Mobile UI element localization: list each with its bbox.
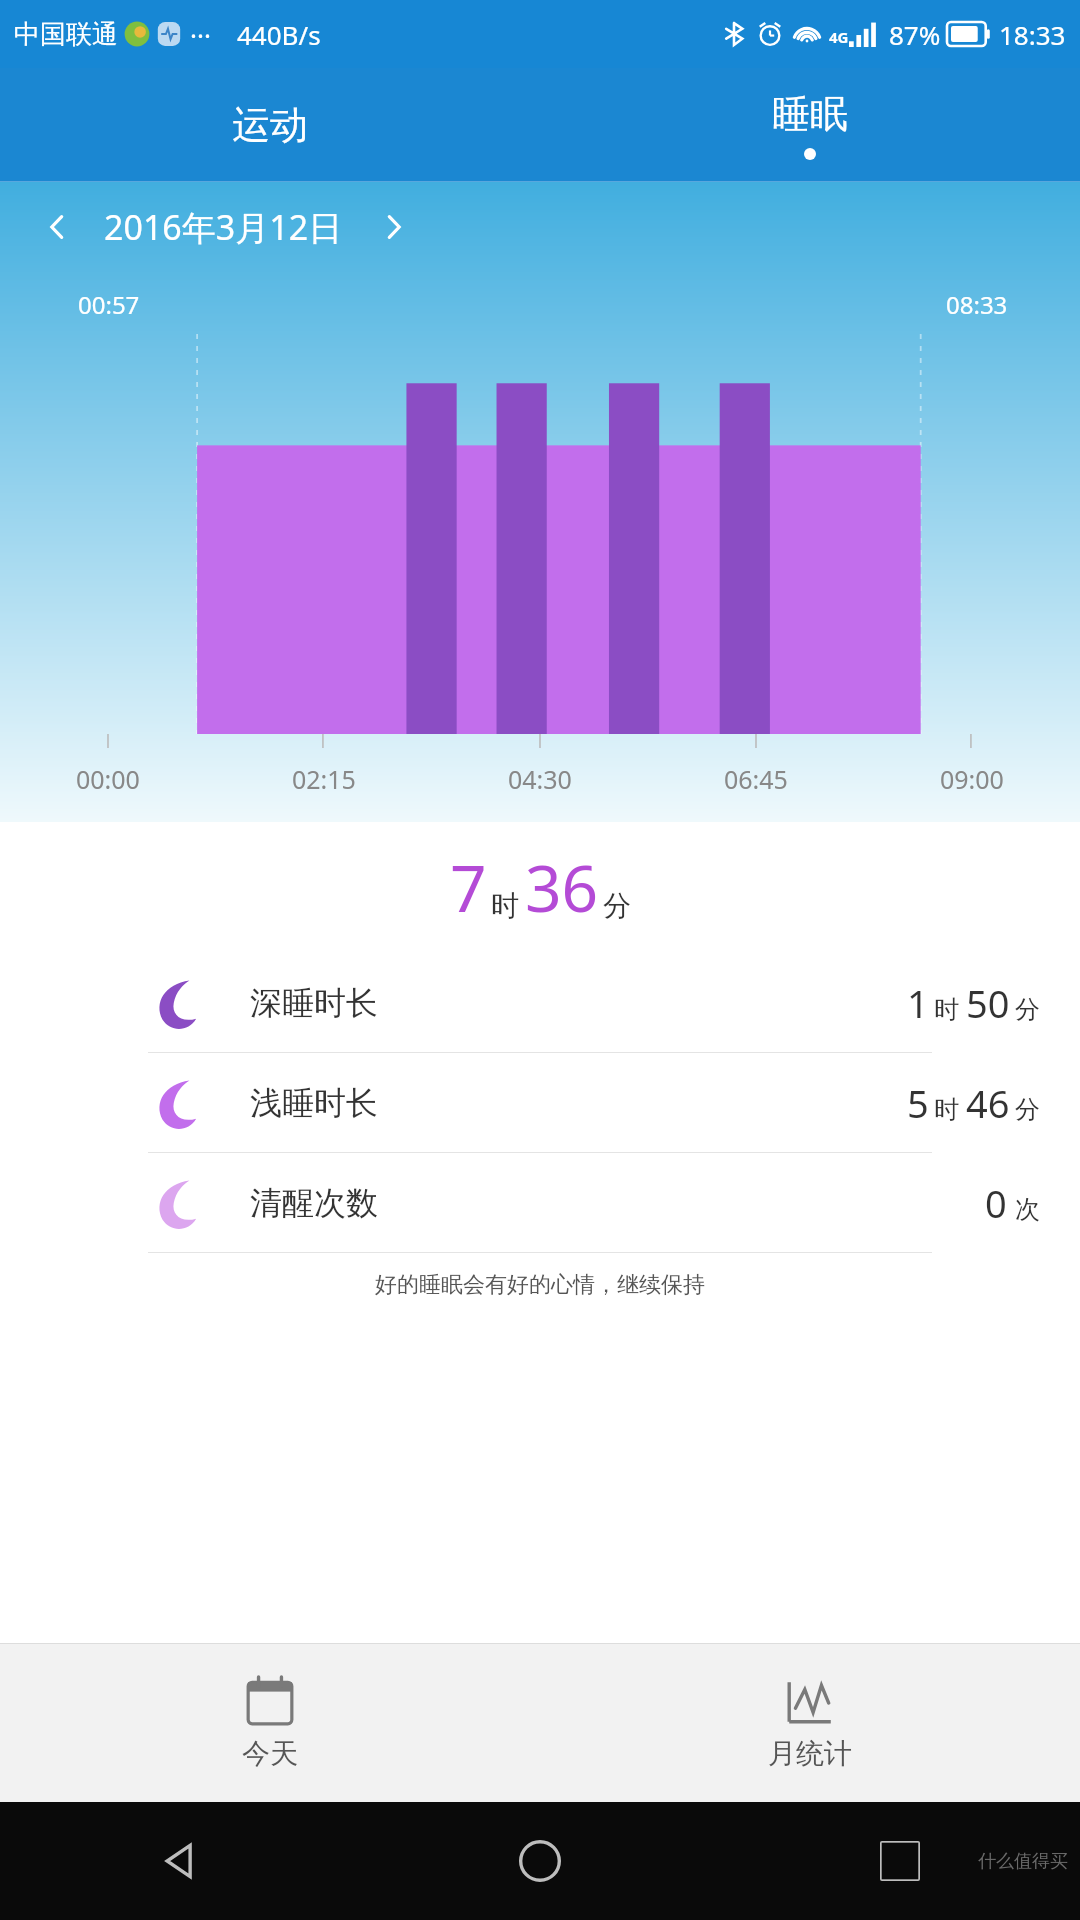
button[interactable]: 浅睡时长 (0, 1053, 1080, 1152)
staticText: 50 (966, 977, 1010, 1029)
staticText: 2016年3月12日 (104, 204, 343, 250)
staticText: 时 (934, 994, 959, 1025)
staticText: 18:33 (999, 17, 1066, 52)
staticText: 月统计 (768, 1736, 852, 1771)
staticText: 时 (491, 888, 519, 923)
staticText: 1 (907, 977, 929, 1029)
staticText: 分 (1015, 994, 1040, 1025)
staticText: 5 (907, 1077, 929, 1129)
button[interactable]: Home (360, 1802, 720, 1920)
staticText: 今天 (242, 1736, 298, 1771)
staticText: 睡眠 (772, 90, 848, 138)
button[interactable]: 睡眠 (540, 68, 1080, 182)
staticText: 46 (966, 1077, 1010, 1129)
staticText: 7 (450, 844, 487, 931)
button[interactable]: 运动 (0, 68, 540, 182)
button[interactable]: Next day (371, 204, 417, 250)
staticText: 0 (985, 1177, 1007, 1229)
staticText: 09:00 (940, 762, 1004, 796)
staticText: 08:33 (946, 288, 1008, 321)
staticText: ··· (190, 17, 211, 52)
staticText: 04:30 (508, 762, 572, 796)
staticText: 分 (603, 888, 631, 923)
button[interactable]: Back (0, 1802, 360, 1920)
staticText: 时 (934, 1094, 959, 1125)
staticText: 分 (1015, 1094, 1040, 1125)
button[interactable]: 今天 (0, 1644, 540, 1802)
button[interactable]: Previous day (34, 204, 80, 250)
staticText: 00:57 (78, 288, 140, 321)
staticText: 什么值得买 (978, 1850, 1068, 1873)
button[interactable]: Recent apps (720, 1802, 1080, 1920)
button[interactable]: 月统计 (540, 1644, 1080, 1802)
staticText: 4G (829, 27, 849, 47)
staticText: 中国联通 (14, 18, 118, 51)
staticText: 440B/s (237, 17, 321, 52)
staticText: 清醒次数 (250, 1183, 378, 1223)
staticText: 00:00 (76, 762, 140, 796)
staticText: 36 (525, 844, 599, 931)
button[interactable]: 清醒次数 (0, 1153, 1080, 1252)
staticText: 深睡时长 (250, 983, 378, 1023)
button[interactable]: 深睡时长 (0, 953, 1080, 1052)
staticText: 06:45 (724, 762, 788, 796)
staticText: 好的睡眠会有好的心情，继续保持 (375, 1271, 705, 1299)
staticText: 02:15 (292, 762, 356, 796)
staticText: 浅睡时长 (250, 1083, 378, 1123)
staticText: 运动 (232, 101, 308, 149)
staticText: 87% (889, 17, 941, 52)
staticText: 次 (1015, 1194, 1040, 1225)
